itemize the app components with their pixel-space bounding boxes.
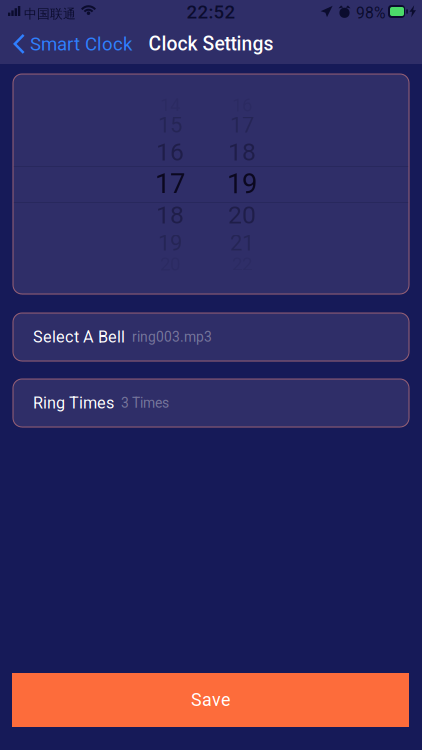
- staticText: 21: [230, 230, 254, 256]
- staticText: Ring Times: [33, 393, 114, 413]
- staticText: 22:52: [186, 1, 235, 23]
- staticText: 20: [228, 200, 256, 229]
- staticText: 19: [227, 168, 257, 200]
- staticText: 17: [155, 168, 185, 200]
- staticText: ring003.mp3: [132, 329, 212, 345]
- staticText: Select A Bell: [33, 327, 125, 347]
- staticText: 中国联通: [24, 6, 76, 22]
- staticText: Save: [191, 689, 230, 710]
- staticText: Clock Settings: [148, 33, 273, 55]
- staticText: 3 Times: [121, 395, 169, 411]
- staticText: 98%: [356, 4, 386, 22]
- staticText: 17: [230, 112, 254, 138]
- button[interactable]: Ring Times: [13, 379, 409, 427]
- button[interactable]: Save: [12, 673, 409, 727]
- staticText: Smart Clock: [30, 33, 132, 55]
- button[interactable]: Smart Clock: [0, 24, 144, 64]
- staticText: 18: [228, 137, 256, 166]
- button[interactable]: Select A Bell: [13, 313, 409, 361]
- staticText: 18: [156, 200, 184, 229]
- staticText: 15: [158, 112, 182, 138]
- staticText: 19: [158, 230, 182, 256]
- staticText: 16: [156, 137, 184, 166]
